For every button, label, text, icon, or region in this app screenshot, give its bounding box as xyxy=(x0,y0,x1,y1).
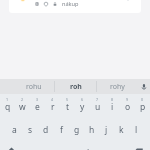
button[interactable]: Backspace xyxy=(127,140,150,150)
staticText: k xyxy=(119,124,124,136)
button[interactable]: 7 xyxy=(90,94,105,117)
staticText: a xyxy=(12,124,17,136)
button[interactable]: g xyxy=(69,117,84,140)
staticText: 9 xyxy=(126,97,129,102)
staticText: t xyxy=(66,101,70,113)
staticText: rohy xyxy=(110,82,125,92)
staticText: 7 xyxy=(96,97,99,102)
staticText: g xyxy=(74,124,80,136)
staticText: nákup xyxy=(62,0,79,8)
staticText: u xyxy=(95,101,101,113)
staticText: p xyxy=(140,101,146,113)
button[interactable]: 3 xyxy=(30,94,45,117)
staticText: l xyxy=(135,124,138,136)
button[interactable]: d xyxy=(38,117,54,140)
staticText: o xyxy=(125,101,131,113)
button[interactable]: h xyxy=(84,117,99,140)
button[interactable]: 8 xyxy=(105,94,120,117)
button[interactable]: 9 xyxy=(120,94,135,117)
button[interactable]: j xyxy=(99,117,114,140)
button[interactable]: Shift xyxy=(0,140,22,150)
staticText: rohu xyxy=(26,82,42,92)
staticText: 1 xyxy=(6,97,9,102)
staticText: q xyxy=(5,101,11,113)
button[interactable]: f xyxy=(54,117,69,140)
button[interactable]: 4 xyxy=(45,94,60,117)
staticText: s xyxy=(28,124,33,136)
staticText: b xyxy=(87,147,93,150)
staticText: roh xyxy=(70,82,82,92)
button[interactable]: 0 xyxy=(135,94,150,117)
button[interactable]: 6 xyxy=(75,94,90,117)
staticText: d xyxy=(43,124,49,136)
button[interactable]: 2 xyxy=(15,94,30,117)
staticText: 0 xyxy=(141,97,144,102)
staticText: 8 xyxy=(111,97,114,102)
button[interactable]: a xyxy=(6,117,22,140)
button[interactable]: 1 xyxy=(0,94,15,117)
button[interactable]: rohu xyxy=(13,79,54,94)
button[interactable]: nákup xyxy=(9,0,141,13)
staticText: 6 xyxy=(81,97,84,102)
staticText: e xyxy=(35,101,40,113)
button[interactable]: k xyxy=(114,117,129,140)
staticText: i xyxy=(111,101,114,113)
button[interactable]: s xyxy=(22,117,38,140)
staticText: w xyxy=(19,101,26,113)
staticText: 4 xyxy=(51,97,54,102)
staticText: y xyxy=(80,101,85,113)
button[interactable]: rohy xyxy=(97,79,138,94)
button[interactable]: l xyxy=(129,117,144,140)
button[interactable]: roh xyxy=(55,79,96,94)
staticText: 3 xyxy=(36,97,39,102)
staticText: f xyxy=(60,124,63,136)
staticText: r xyxy=(51,101,55,113)
staticText: 2 xyxy=(21,97,24,102)
staticText: j xyxy=(105,124,108,136)
button[interactable]: Voice input xyxy=(138,79,150,94)
button[interactable]: 5 xyxy=(60,94,75,117)
staticText: 5 xyxy=(66,97,69,102)
button[interactable]: b xyxy=(82,140,97,150)
staticText: h xyxy=(89,124,95,136)
